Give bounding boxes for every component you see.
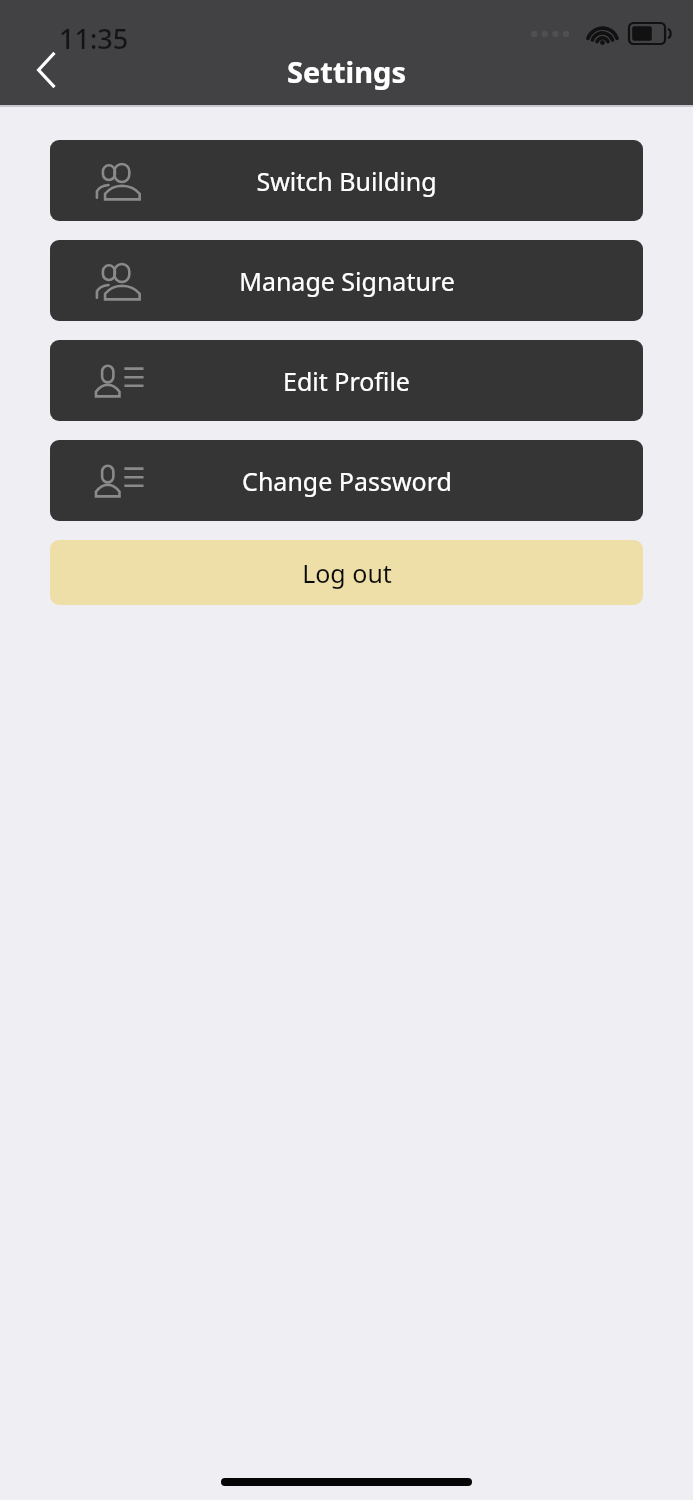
staticText: Settings <box>287 52 406 91</box>
staticText: Change Password <box>242 464 452 498</box>
button[interactable]: Switch Building <box>50 140 643 221</box>
staticText: Manage Signature <box>239 264 455 298</box>
staticText: Edit Profile <box>283 364 410 398</box>
staticText: Switch Building <box>256 164 437 198</box>
button[interactable]: Back <box>18 44 76 96</box>
button[interactable]: Log out <box>50 540 643 605</box>
staticText: 11:35 <box>59 20 129 57</box>
staticText: Log out <box>302 556 392 590</box>
button[interactable]: Edit Profile <box>50 340 643 421</box>
button[interactable]: Manage Signature <box>50 240 643 321</box>
button[interactable]: Change Password <box>50 440 643 521</box>
